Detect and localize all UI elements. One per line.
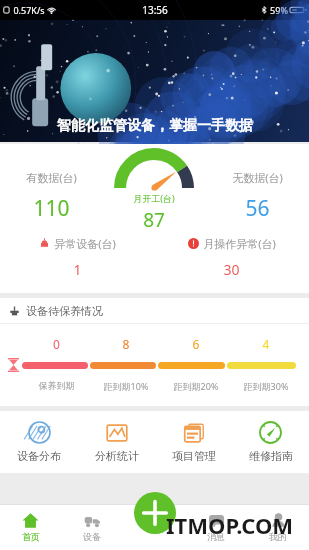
- staticText: 设备: [83, 531, 101, 542]
- button[interactable]: 我的: [247, 504, 309, 550]
- button[interactable]: 消息: [185, 504, 247, 550]
- staticText: 6: [161, 336, 231, 352]
- staticText: 项目管理: [172, 449, 216, 463]
- staticText: 59%: [270, 4, 288, 16]
- staticText: 分析统计: [95, 449, 139, 463]
- button[interactable]: 分析统计: [78, 418, 155, 467]
- staticText: 月开工(台): [133, 192, 175, 204]
- button[interactable]: 设备: [61, 504, 123, 550]
- button[interactable]: 项目管理: [155, 418, 232, 467]
- staticText: 消息: [207, 531, 225, 542]
- button[interactable]: 首页: [0, 504, 61, 550]
- staticText: 0.57K/s: [13, 4, 45, 16]
- staticText: 智能化监管设备，掌握一手数据: [57, 117, 253, 135]
- staticText: 110: [33, 194, 70, 223]
- staticText: 8: [91, 336, 161, 352]
- staticText: 距到期30%: [231, 380, 301, 392]
- staticText: 首页: [22, 531, 40, 542]
- staticText: 设备待保养情况: [26, 304, 103, 318]
- staticText: 1: [73, 260, 82, 279]
- staticText: 维修指南: [249, 449, 293, 463]
- staticText: 56: [245, 194, 270, 223]
- button[interactable]: Add: [134, 492, 176, 534]
- staticText: 无数据(台): [232, 170, 283, 185]
- staticText: 距到期10%: [91, 380, 161, 392]
- staticText: 有数据(台): [26, 170, 77, 185]
- staticText: 13:56: [142, 3, 168, 17]
- button[interactable]: 维修指南: [232, 417, 309, 467]
- staticText: 4: [231, 336, 301, 352]
- staticText: 保养到期: [22, 380, 91, 391]
- staticText: 设备分布: [17, 449, 61, 463]
- staticText: 我的: [269, 531, 287, 542]
- staticText: 距到期20%: [161, 380, 231, 392]
- staticText: 0: [22, 336, 91, 352]
- button[interactable]: 设备分布: [0, 417, 78, 467]
- staticText: 异常设备(台): [54, 236, 116, 251]
- staticText: ITMOP.COM: [166, 510, 294, 540]
- staticText: 月操作异常(台): [203, 236, 276, 251]
- staticText: 87: [143, 207, 165, 233]
- staticText: 30: [223, 260, 240, 279]
